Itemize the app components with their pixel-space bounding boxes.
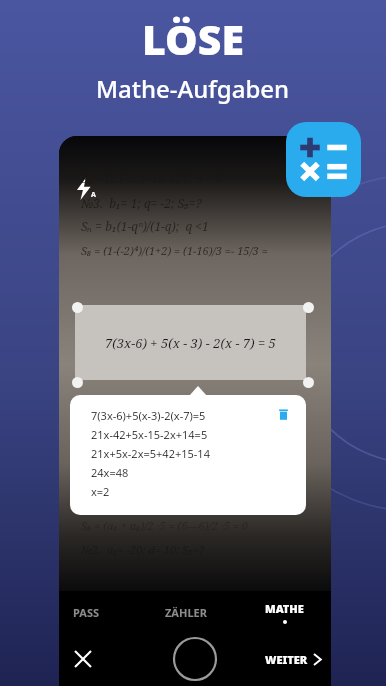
button[interactable]: WEITER bbox=[265, 652, 323, 667]
staticText: 7(3x−6) + 5(x − 3) − 2(x − 7) = 5 bbox=[105, 334, 276, 352]
staticText: PASS bbox=[73, 605, 100, 620]
button[interactable]: Math solver app icon bbox=[286, 122, 361, 197]
staticText: 21x-42+5x-15-2x+14=5 bbox=[91, 427, 208, 442]
staticText: Mathe-Aufgaben bbox=[96, 72, 290, 105]
staticText: 21x+5x-2x=5+42+15-14 bbox=[91, 446, 210, 461]
staticText: S₈ = (a₁ + a₈)/2 ·5 = (6—6)/2 ·5 = 0 bbox=[81, 518, 249, 533]
button[interactable]: Resize selection bbox=[303, 302, 314, 313]
button[interactable]: 7(3x−6) + 5(x − 3) − 2(x − 7) = 5 bbox=[75, 305, 306, 380]
staticText: 7(3x-6)+5(x-3)-2(x-7)=5 bbox=[91, 408, 206, 423]
staticText: №3. b₁= 1; q= -2; S₅=? bbox=[81, 195, 202, 211]
button[interactable]: PASS bbox=[59, 596, 131, 628]
button[interactable]: Resize selection bbox=[303, 377, 314, 388]
staticText: Sₙ = b₁(1−qⁿ)/(1−q); q <1 bbox=[81, 218, 209, 234]
staticText: №2. a₁= -20; d= 10; S₅=? bbox=[81, 542, 205, 557]
button[interactable]: ZÄHLER bbox=[141, 596, 231, 628]
staticText: MATHE bbox=[265, 601, 304, 616]
button[interactable]: Resize selection bbox=[72, 377, 83, 388]
staticText: A bbox=[91, 190, 96, 200]
staticText: LÖSE bbox=[142, 11, 244, 67]
staticText: S₈ = (2·(−20)+10·4)/2 ·5 = 0 bbox=[81, 170, 223, 186]
staticText: WEITER bbox=[265, 652, 308, 667]
button[interactable]: Flash auto bbox=[67, 172, 101, 206]
button[interactable]: MATHE bbox=[239, 596, 329, 628]
staticText: S₈ = (1−(−2)⁴)/(1+2) = (1−16)/3 =− 15/3 … bbox=[81, 243, 268, 258]
staticText: ZÄHLER bbox=[165, 605, 207, 620]
staticText: 24x=48 bbox=[91, 465, 129, 480]
button[interactable]: 7(3x-6)+5(x-3)-2(x-7)=5 bbox=[70, 395, 306, 515]
button[interactable]: Delete bbox=[270, 401, 296, 427]
button[interactable]: Close bbox=[63, 639, 103, 679]
staticText: x=2 bbox=[91, 484, 110, 499]
button[interactable]: Shutter bbox=[171, 635, 219, 683]
button[interactable]: Resize selection bbox=[72, 302, 83, 313]
